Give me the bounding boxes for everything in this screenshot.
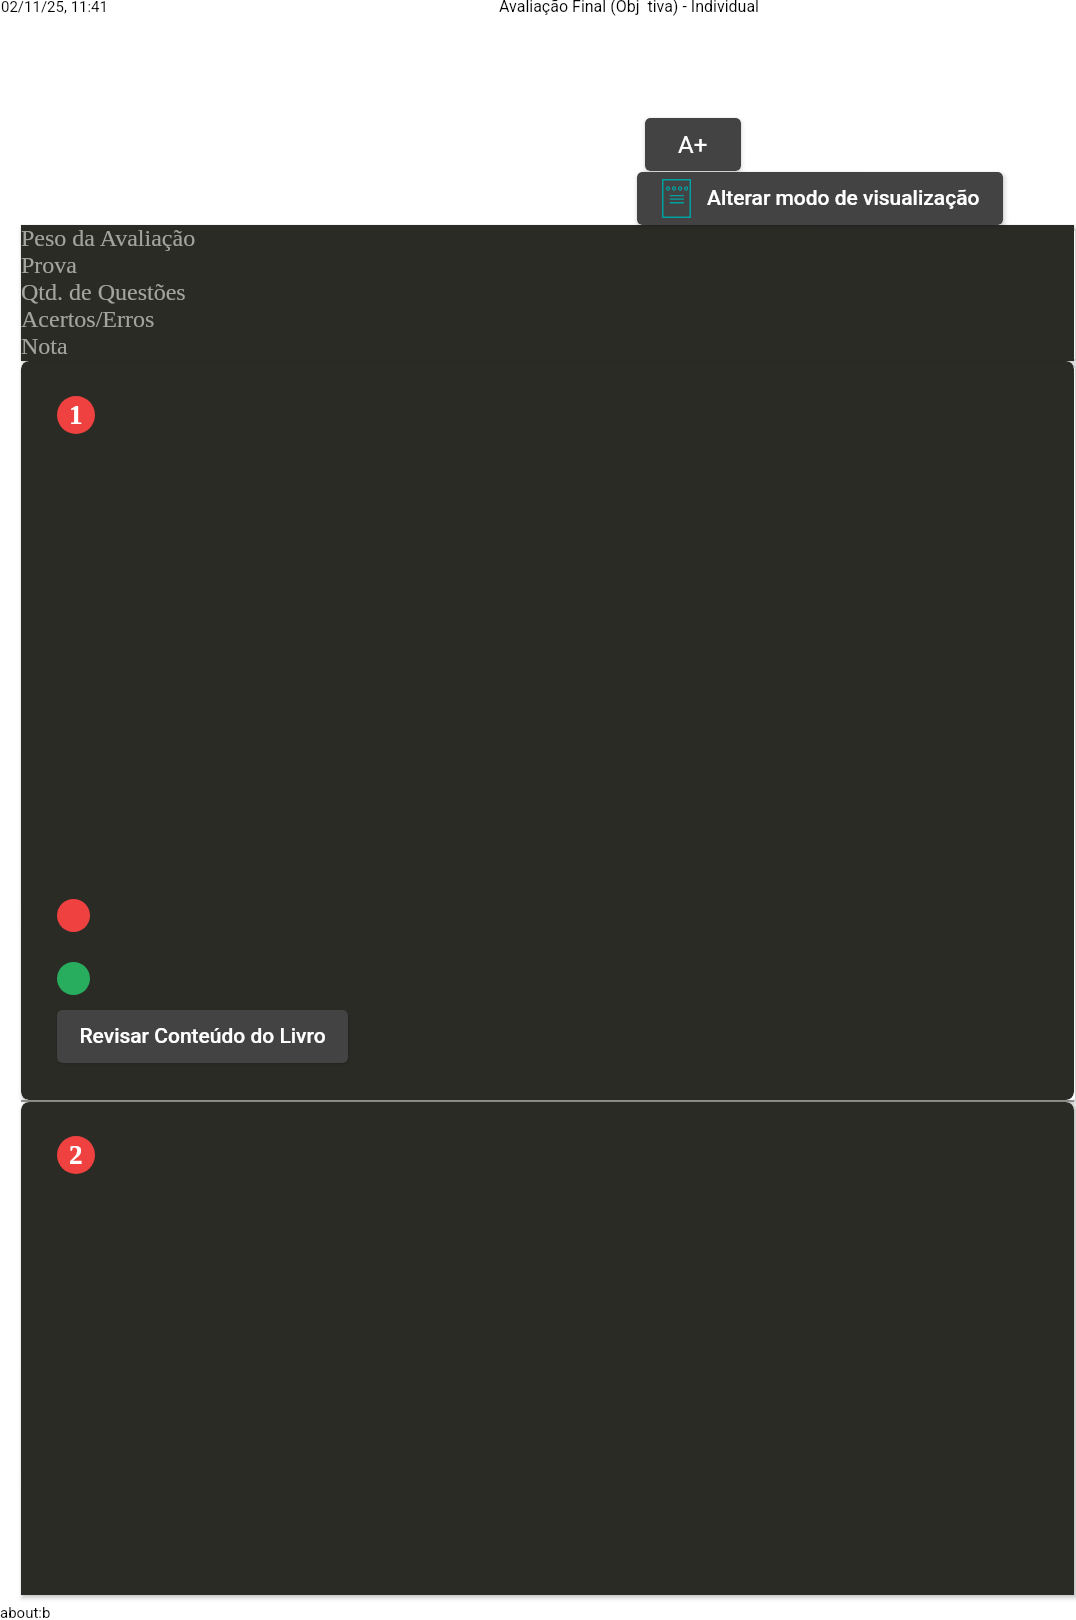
staticText: Peso da Avaliação [21, 225, 196, 252]
staticText: Nota [21, 333, 68, 360]
other: Resposta correta [57, 962, 90, 995]
staticText: Alterar modo de visualização [707, 186, 980, 211]
staticText: 1 [69, 400, 83, 430]
staticText: Acertos/Erros [21, 306, 155, 333]
button[interactable]: Alterar modo de visualização [637, 172, 1003, 225]
button[interactable]: A+ [645, 118, 741, 171]
other: Alterar modo de visualização [662, 179, 691, 218]
staticText: about:b [0, 1604, 51, 1620]
staticText: 02/11/25, 11:41 [1, 0, 108, 16]
button[interactable]: 1 [57, 396, 95, 434]
staticText: Revisar Conteúdo do Livro [79, 1024, 326, 1049]
other: Resposta incorreta [57, 899, 90, 932]
staticText: Prova [21, 252, 77, 279]
staticText: Qtd. de Questões [21, 279, 186, 306]
button[interactable]: 2 [57, 1136, 95, 1174]
staticText: 2 [69, 1140, 83, 1170]
button[interactable]: Revisar Conteúdo do Livro [57, 1010, 348, 1063]
staticText: Avaliação Final (Obj tiva) - Individual [499, 0, 759, 16]
staticText: A+ [678, 131, 708, 159]
